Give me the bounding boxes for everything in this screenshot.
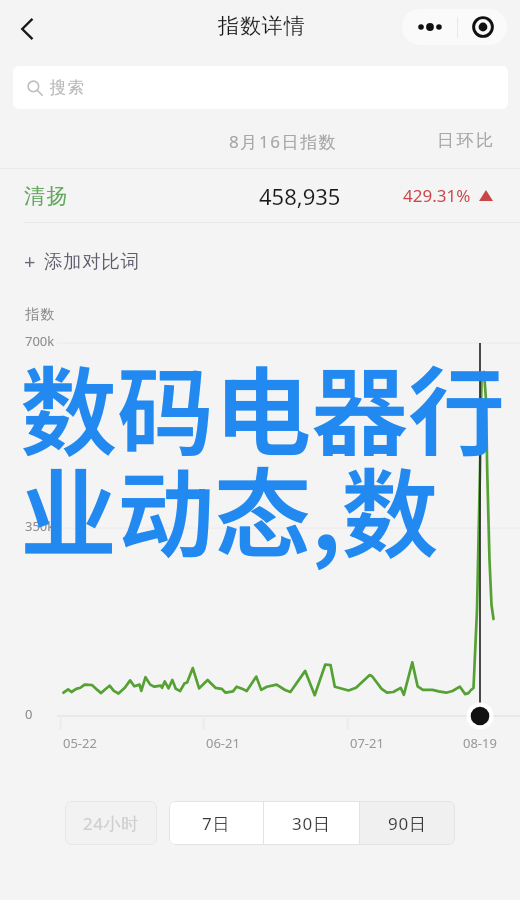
staticText: 350k <box>25 517 55 535</box>
button[interactable]: Back <box>2 5 50 53</box>
staticText: 数码电器行业动态,数 <box>20 335 520 578</box>
staticText: 08-19 <box>463 734 497 752</box>
staticText: 24小时 <box>83 812 139 835</box>
button[interactable]: Close <box>458 9 507 45</box>
button[interactable]: 30日 <box>264 801 359 845</box>
staticText: 日环比 <box>437 130 496 151</box>
staticText: 搜索 <box>49 77 85 98</box>
staticText: 06-21 <box>206 734 240 752</box>
button[interactable]: + <box>0 235 520 287</box>
staticText: 添加对比词 <box>44 250 140 273</box>
staticText: 8月16日指数 <box>229 130 338 153</box>
staticText: 429.31% <box>403 184 471 207</box>
staticText: 700k <box>25 332 55 350</box>
staticText: 05-22 <box>63 734 97 752</box>
staticText: 指数详情 <box>218 13 306 39</box>
staticText: 清扬 <box>24 183 70 209</box>
staticText: 458,935 <box>259 181 341 211</box>
staticText: 7日 <box>202 812 231 835</box>
button[interactable]: 24小时 <box>65 801 157 845</box>
button[interactable]: 7日 <box>169 801 263 845</box>
staticText: 30日 <box>292 812 331 835</box>
staticText: 07-21 <box>350 734 384 752</box>
staticText: 90日 <box>388 812 427 835</box>
button[interactable]: 搜索 <box>13 66 508 109</box>
staticText: 0 <box>25 705 33 723</box>
button[interactable]: 90日 <box>360 801 455 845</box>
button[interactable]: More options <box>402 9 457 45</box>
staticText: + <box>24 248 36 275</box>
button[interactable]: 清扬 <box>0 169 520 222</box>
staticText: 指数 <box>25 306 56 324</box>
